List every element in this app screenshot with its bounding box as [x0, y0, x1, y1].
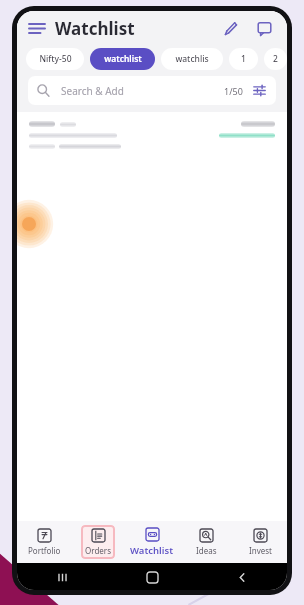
staticText: Portfolio [28, 545, 61, 556]
button[interactable]: 2 [264, 48, 287, 70]
button[interactable]: Filter [252, 83, 267, 98]
button[interactable]: Invest [245, 525, 276, 559]
staticText: 1/50 [224, 85, 243, 97]
button[interactable]: Recents [50, 565, 74, 589]
button[interactable]: Back [230, 565, 254, 589]
staticText: watchlis [175, 53, 209, 65]
staticText: Nifty-50 [39, 53, 72, 65]
button[interactable]: Search & Add [28, 76, 276, 105]
button[interactable]: watchlis [161, 48, 223, 70]
button[interactable]: watchlist [90, 48, 155, 70]
button[interactable]: 1 [229, 48, 258, 70]
staticText: 1 [241, 53, 246, 65]
button[interactable]: Orders [81, 525, 115, 559]
staticText: 2 [273, 53, 278, 65]
staticText: Orders [85, 545, 111, 556]
button[interactable]: Ideas [192, 525, 221, 559]
button[interactable]: Edit [216, 14, 244, 42]
staticText: Watchlist [130, 544, 174, 557]
button[interactable]: Watchlist [126, 524, 178, 560]
button[interactable]: Nifty-50 [26, 48, 84, 70]
button[interactable]: Home [140, 565, 164, 589]
staticText: Watchlist [55, 17, 135, 40]
staticText: Search & Add [61, 84, 124, 98]
staticText: Ideas [196, 545, 217, 556]
button[interactable]: Messages [250, 14, 278, 42]
staticText: watchlist [104, 53, 142, 65]
button[interactable]: Menu [26, 17, 48, 39]
staticText: Invest [249, 545, 272, 556]
button[interactable]: Portfolio [24, 525, 65, 559]
